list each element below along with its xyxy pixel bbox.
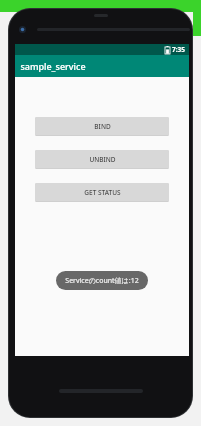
button[interactable]: UNBIND bbox=[35, 150, 169, 168]
staticText: 7:35 bbox=[172, 45, 185, 54]
staticText: sample_service bbox=[20, 60, 86, 72]
staticText: Serviceのcount値は:12 bbox=[65, 276, 139, 286]
button[interactable]: GET STATUS bbox=[35, 183, 169, 201]
button[interactable]: BIND bbox=[35, 117, 169, 135]
staticText: GET STATUS bbox=[84, 188, 121, 197]
staticText: UNBIND bbox=[89, 155, 116, 164]
staticText: BIND bbox=[94, 122, 111, 131]
